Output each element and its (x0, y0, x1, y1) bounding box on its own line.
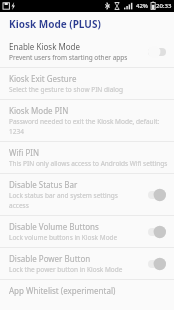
staticText: Disable Status Bar (9, 179, 78, 190)
button[interactable]: Kiosk Exit Gesture (0, 68, 174, 99)
staticText: 1234 (9, 127, 24, 136)
staticText: 20:33 (156, 2, 172, 10)
staticText: This PIN only allows access to Androids … (9, 159, 168, 168)
button[interactable]: Kiosk Mode PIN (0, 100, 174, 141)
staticText: Enable Kiosk Mode (9, 41, 81, 52)
button[interactable]: App Whitelist (experimental) (0, 280, 174, 301)
staticText: Wifi PIN (9, 147, 40, 158)
staticText: App Whitelist (experimental) (9, 285, 116, 296)
button[interactable]: Wifi PIN (0, 142, 174, 173)
staticText: Disable Volume Buttons (9, 221, 99, 232)
staticText: 42% (136, 2, 148, 10)
button[interactable]: Toggle off (146, 45, 168, 59)
staticText: Kiosk Mode PIN (9, 105, 69, 116)
staticText: Lock the power button in Kiosk Mode (9, 265, 123, 274)
button[interactable]: Toggle on (146, 188, 168, 202)
staticText: Prevent users from starting other apps (9, 53, 128, 62)
staticText: Lock status bar and system settings (9, 191, 118, 200)
staticText: access (9, 201, 29, 210)
button[interactable]: Disable Volume Buttons (0, 216, 174, 247)
button[interactable]: Disable Power Button (0, 248, 174, 279)
staticText: Lock volume buttons in Kiosk Mode (9, 233, 118, 242)
staticText: Kiosk Mode (PLUS) (9, 17, 101, 31)
button[interactable]: Enable Kiosk Mode (0, 36, 174, 67)
button[interactable]: Toggle on (146, 257, 168, 271)
button[interactable]: Toggle on (146, 225, 168, 239)
staticText: Disable Power Button (9, 253, 91, 264)
staticText: Select the gesture to show PIN dialog (9, 85, 123, 94)
button[interactable]: Disable Status Bar (0, 174, 174, 215)
staticText: Kiosk Exit Gesture (9, 73, 77, 84)
staticText: Password needed to exit the Kiosk Mode, … (9, 117, 160, 126)
